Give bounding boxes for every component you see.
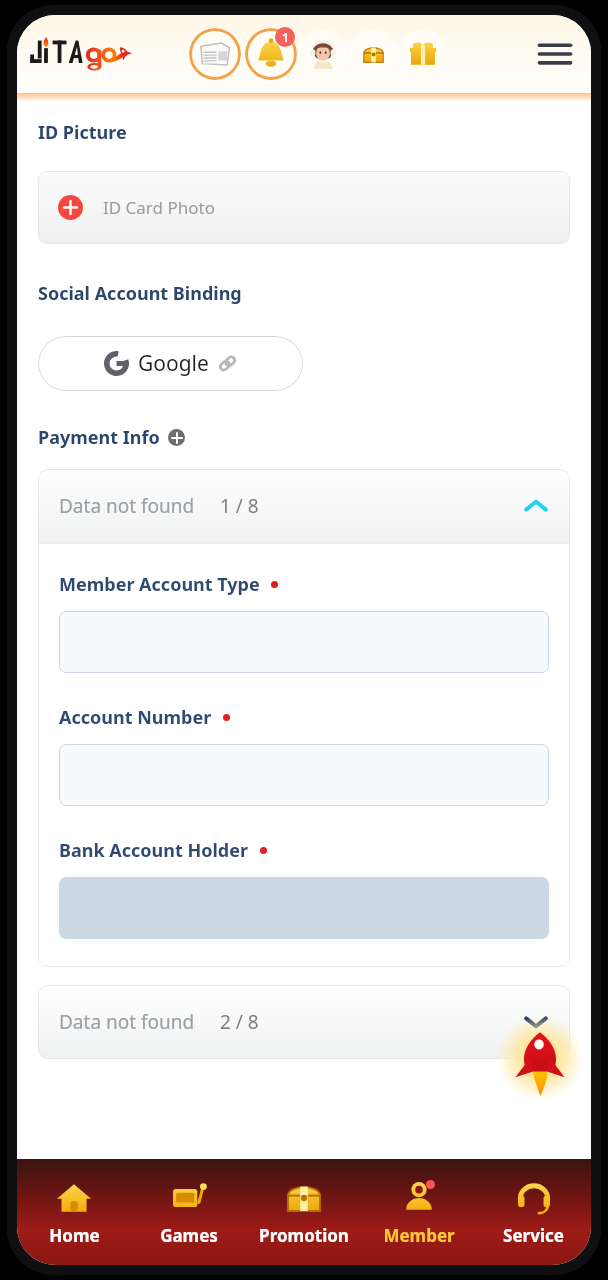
staticText: Payment Info bbox=[38, 425, 160, 450]
staticText: Games bbox=[160, 1224, 218, 1247]
button[interactable]: Member bbox=[361, 1159, 476, 1265]
staticText: ID Card Photo bbox=[103, 196, 215, 219]
button[interactable] bbox=[27, 26, 187, 82]
button[interactable]: Service bbox=[476, 1159, 591, 1265]
staticText: Home bbox=[49, 1224, 100, 1247]
button[interactable]: Gifts bbox=[399, 30, 447, 78]
staticText: Member Account Type bbox=[59, 572, 260, 597]
button[interactable]: Google bbox=[38, 336, 303, 391]
staticText: Account Number bbox=[59, 705, 212, 730]
button[interactable] bbox=[59, 611, 549, 673]
staticText: Promotion bbox=[259, 1224, 349, 1247]
staticText: ID Picture bbox=[38, 120, 127, 145]
button[interactable]: Notifications bbox=[245, 28, 297, 80]
staticText: 1 / 8 bbox=[220, 493, 259, 519]
staticText: Google bbox=[138, 349, 209, 378]
button[interactable]: Home bbox=[17, 1159, 131, 1265]
staticText: Data not found bbox=[59, 493, 195, 519]
staticText: Service bbox=[503, 1224, 564, 1247]
staticText: Member bbox=[383, 1224, 455, 1247]
button[interactable]: ID Card Photo bbox=[38, 171, 570, 244]
button[interactable]: Data not found bbox=[38, 469, 570, 543]
staticText: 2 / 8 bbox=[220, 1009, 259, 1035]
button[interactable] bbox=[59, 744, 549, 806]
button[interactable]: Promotion bbox=[246, 1159, 361, 1265]
button[interactable]: Scroll to top bbox=[497, 1015, 583, 1101]
button[interactable]: News bbox=[189, 28, 241, 80]
staticText: Bank Account Holder bbox=[59, 838, 249, 863]
button[interactable]: Treasure bbox=[349, 30, 397, 78]
button[interactable]: Support agent bbox=[299, 30, 347, 78]
button[interactable]: Menu bbox=[529, 28, 581, 80]
staticText: Data not found bbox=[59, 1009, 195, 1035]
staticText: 1 bbox=[282, 29, 289, 45]
button[interactable]: Games bbox=[131, 1159, 246, 1265]
staticText: Social Account Binding bbox=[38, 281, 242, 306]
button[interactable]: Data not found bbox=[38, 985, 570, 1059]
button[interactable]: Add payment info bbox=[168, 429, 185, 446]
